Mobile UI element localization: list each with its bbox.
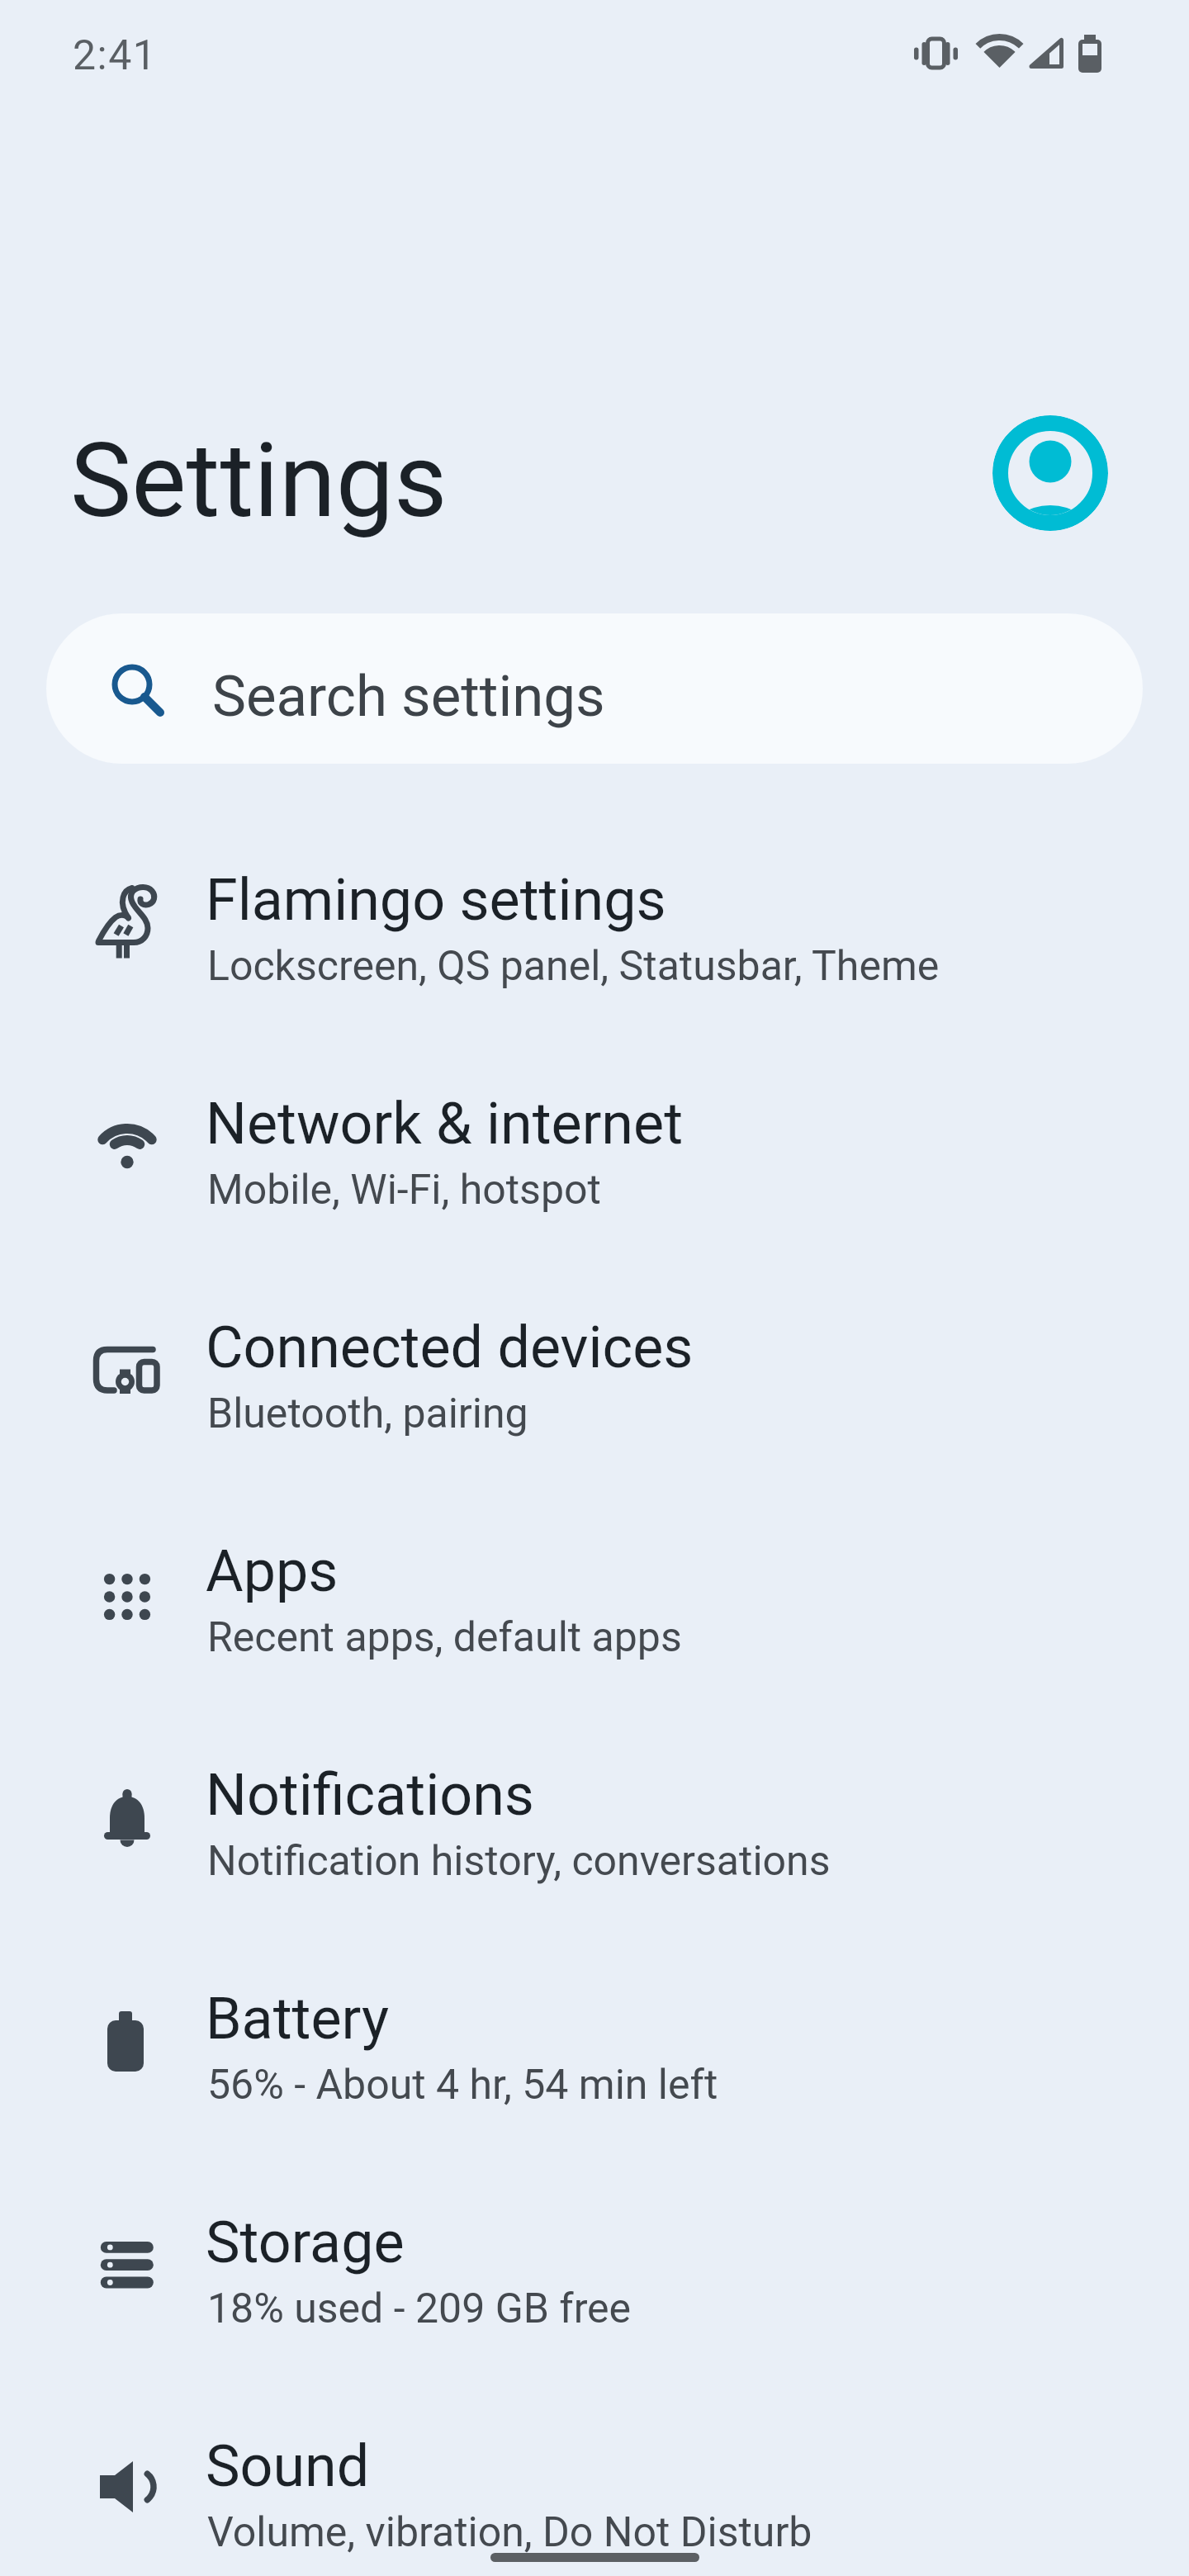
staticText: Battery [206, 1985, 390, 2053]
staticText: Mobile, Wi-Fi, hotspot [207, 1166, 601, 1215]
staticText: Bluetooth, pairing [207, 1390, 528, 1438]
staticText: Network & internet [206, 1090, 684, 1158]
staticText: Connected devices [206, 1314, 694, 1381]
staticText: 56% - About 4 hr, 54 min left [207, 2061, 718, 2110]
staticText: Settings [70, 420, 448, 541]
button[interactable]: Connected devices [0, 1265, 1189, 1489]
button[interactable]: Search settings [46, 613, 1143, 764]
button[interactable]: Sound [0, 2384, 1189, 2576]
button[interactable]: Network & internet [0, 1041, 1189, 1265]
staticText: Volume, vibration, Do Not Disturb [207, 2508, 812, 2557]
button[interactable]: Battery [0, 1936, 1189, 2160]
staticText: 2:41 [73, 31, 158, 80]
staticText: Apps [206, 1537, 339, 1605]
button[interactable]: Apps [0, 1489, 1189, 1712]
staticText: Flamingo settings [206, 866, 666, 934]
staticText: Sound [206, 2432, 370, 2500]
staticText: Lockscreen, QS panel, Statusbar, Theme [207, 942, 940, 991]
button[interactable]: Notifications [0, 1712, 1189, 1936]
staticText: Search settings [212, 663, 605, 730]
staticText: Recent apps, default apps [207, 1613, 682, 1662]
staticText: Notifications [206, 1761, 534, 1829]
button[interactable]: Flamingo settings [0, 817, 1189, 1041]
button[interactable]: Storage [0, 2160, 1189, 2384]
staticText: Storage [206, 2209, 405, 2276]
staticText: Notification history, conversations [207, 1837, 831, 1886]
button[interactable] [992, 415, 1108, 531]
staticText: 18% used - 209 GB free [207, 2285, 632, 2333]
